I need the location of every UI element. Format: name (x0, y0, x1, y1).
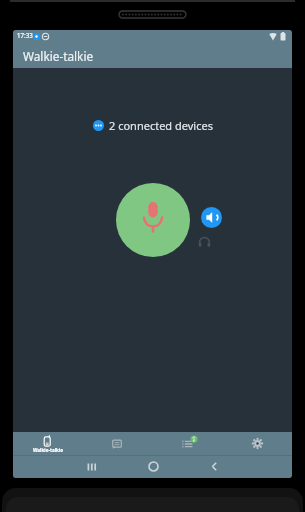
staticText: 17:33 (17, 31, 33, 39)
button[interactable] (201, 207, 222, 228)
staticText: 2 connected devices (109, 118, 213, 133)
staticText: Walkie-talkie (33, 447, 63, 453)
button[interactable] (82, 432, 152, 455)
button[interactable] (133, 455, 173, 478)
button[interactable] (72, 455, 112, 478)
button[interactable]: Walkie-talkie (13, 432, 82, 455)
button[interactable] (222, 432, 292, 455)
button[interactable] (194, 455, 234, 478)
button[interactable]: 2 connected devices (93, 118, 213, 133)
staticText: Walkie-talkie (23, 48, 94, 64)
button[interactable] (116, 183, 190, 257)
button[interactable] (152, 432, 222, 455)
